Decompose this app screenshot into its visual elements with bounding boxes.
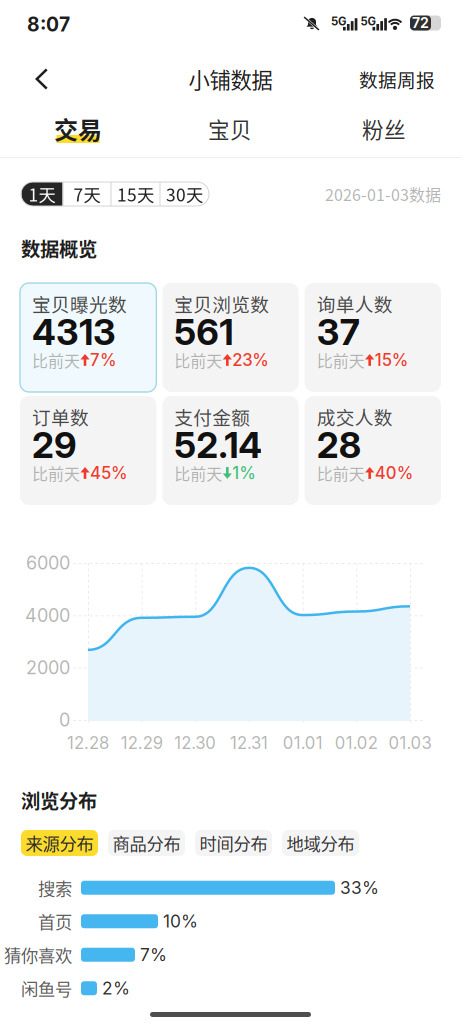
button[interactable]: 15天 xyxy=(111,182,159,206)
button[interactable]: 地域分布 xyxy=(282,830,359,856)
staticText: 1天 xyxy=(28,181,55,207)
staticText: 数据概览 xyxy=(21,234,97,262)
staticText: 30天 xyxy=(166,181,203,207)
staticText: 5G xyxy=(331,14,347,28)
staticText: 01.03 xyxy=(388,733,431,753)
staticText: 比前天 xyxy=(174,461,222,485)
staticText: 搜索 xyxy=(38,875,72,900)
staticText: 浏览分布 xyxy=(21,786,97,814)
button[interactable]: 30天 xyxy=(160,182,208,206)
staticText: 首页 xyxy=(38,909,72,934)
staticText: 561 xyxy=(174,310,233,354)
staticText: 比前天 xyxy=(317,348,365,372)
staticText: 4000 xyxy=(25,604,70,626)
button[interactable]: 返回 xyxy=(19,54,63,104)
button[interactable]: 支付金额 xyxy=(162,396,299,505)
staticText: 01.02 xyxy=(335,733,378,753)
staticText: 比前天 xyxy=(174,348,222,372)
button[interactable]: 来源分布 xyxy=(21,830,98,856)
staticText: 支付金额 xyxy=(174,403,250,430)
staticText: 猜你喜欢 xyxy=(4,942,72,967)
staticText: 闲鱼号 xyxy=(21,976,72,1001)
staticText: 12.28 xyxy=(67,733,109,753)
button[interactable]: 粉丝 xyxy=(346,96,421,144)
button[interactable]: 时间分布 xyxy=(195,830,272,856)
staticText: 7% xyxy=(140,944,167,965)
button[interactable]: 宝贝 xyxy=(192,96,267,144)
button[interactable]: 宝贝浏览数 xyxy=(162,283,299,392)
staticText: 5G xyxy=(360,14,376,28)
staticText: 45% xyxy=(90,463,128,483)
staticText: 6000 xyxy=(26,552,70,574)
button[interactable]: 7天 xyxy=(63,182,110,206)
staticText: 15% xyxy=(375,350,409,370)
staticText: 0 xyxy=(59,709,70,731)
staticText: 2% xyxy=(102,978,130,999)
staticText: 15天 xyxy=(117,181,154,207)
staticText: 29 xyxy=(32,423,77,467)
staticText: 小铺数据 xyxy=(188,64,272,94)
staticText: 23% xyxy=(232,350,269,370)
staticText: 2000 xyxy=(26,657,70,679)
button[interactable]: 订单数 xyxy=(20,396,156,505)
button[interactable]: 数据周报 xyxy=(351,54,443,104)
staticText: 10% xyxy=(163,911,198,932)
staticText: 40% xyxy=(375,463,414,483)
staticText: 比前天 xyxy=(317,461,365,485)
staticText: 宝贝浏览数 xyxy=(174,290,269,317)
staticText: 比前天 xyxy=(32,461,80,485)
staticText: 12.30 xyxy=(174,733,216,753)
staticText: 成交人数 xyxy=(317,403,393,430)
staticText: 数据周报 xyxy=(359,65,435,92)
staticText: 4313 xyxy=(32,310,116,354)
button[interactable]: 商品分布 xyxy=(108,830,185,856)
staticText: 72 xyxy=(412,14,429,31)
staticText: 52.14 xyxy=(174,423,262,467)
staticText: 7% xyxy=(90,350,117,370)
button[interactable]: 询单人数 xyxy=(305,283,441,392)
staticText: 宝贝曝光数 xyxy=(32,290,127,317)
staticText: 01.01 xyxy=(283,733,323,753)
staticText: 1% xyxy=(232,463,256,483)
staticText: 交易 xyxy=(54,111,102,146)
staticText: 28 xyxy=(317,423,361,467)
staticText: 2026-01-03数据 xyxy=(325,182,441,206)
staticText: 来源分布 xyxy=(25,830,93,855)
staticText: 比前天 xyxy=(32,348,80,372)
staticText: 33% xyxy=(340,877,379,898)
staticText: 订单数 xyxy=(32,403,89,430)
staticText: 询单人数 xyxy=(317,290,393,317)
button[interactable]: 交易 xyxy=(40,96,115,144)
staticText: 时间分布 xyxy=(199,830,267,855)
button[interactable]: 宝贝曝光数 xyxy=(20,283,156,392)
staticText: 7天 xyxy=(73,181,100,207)
staticText: 12.29 xyxy=(121,733,163,753)
staticText: 37 xyxy=(317,310,360,354)
staticText: 宝贝 xyxy=(208,113,252,144)
staticText: 12.31 xyxy=(230,733,268,753)
staticText: 8:07 xyxy=(27,13,70,36)
staticText: 地域分布 xyxy=(286,830,354,855)
staticText: 粉丝 xyxy=(362,113,406,144)
button[interactable]: 1天 xyxy=(21,182,62,206)
button[interactable]: 成交人数 xyxy=(305,396,441,505)
staticText: 商品分布 xyxy=(112,830,180,855)
